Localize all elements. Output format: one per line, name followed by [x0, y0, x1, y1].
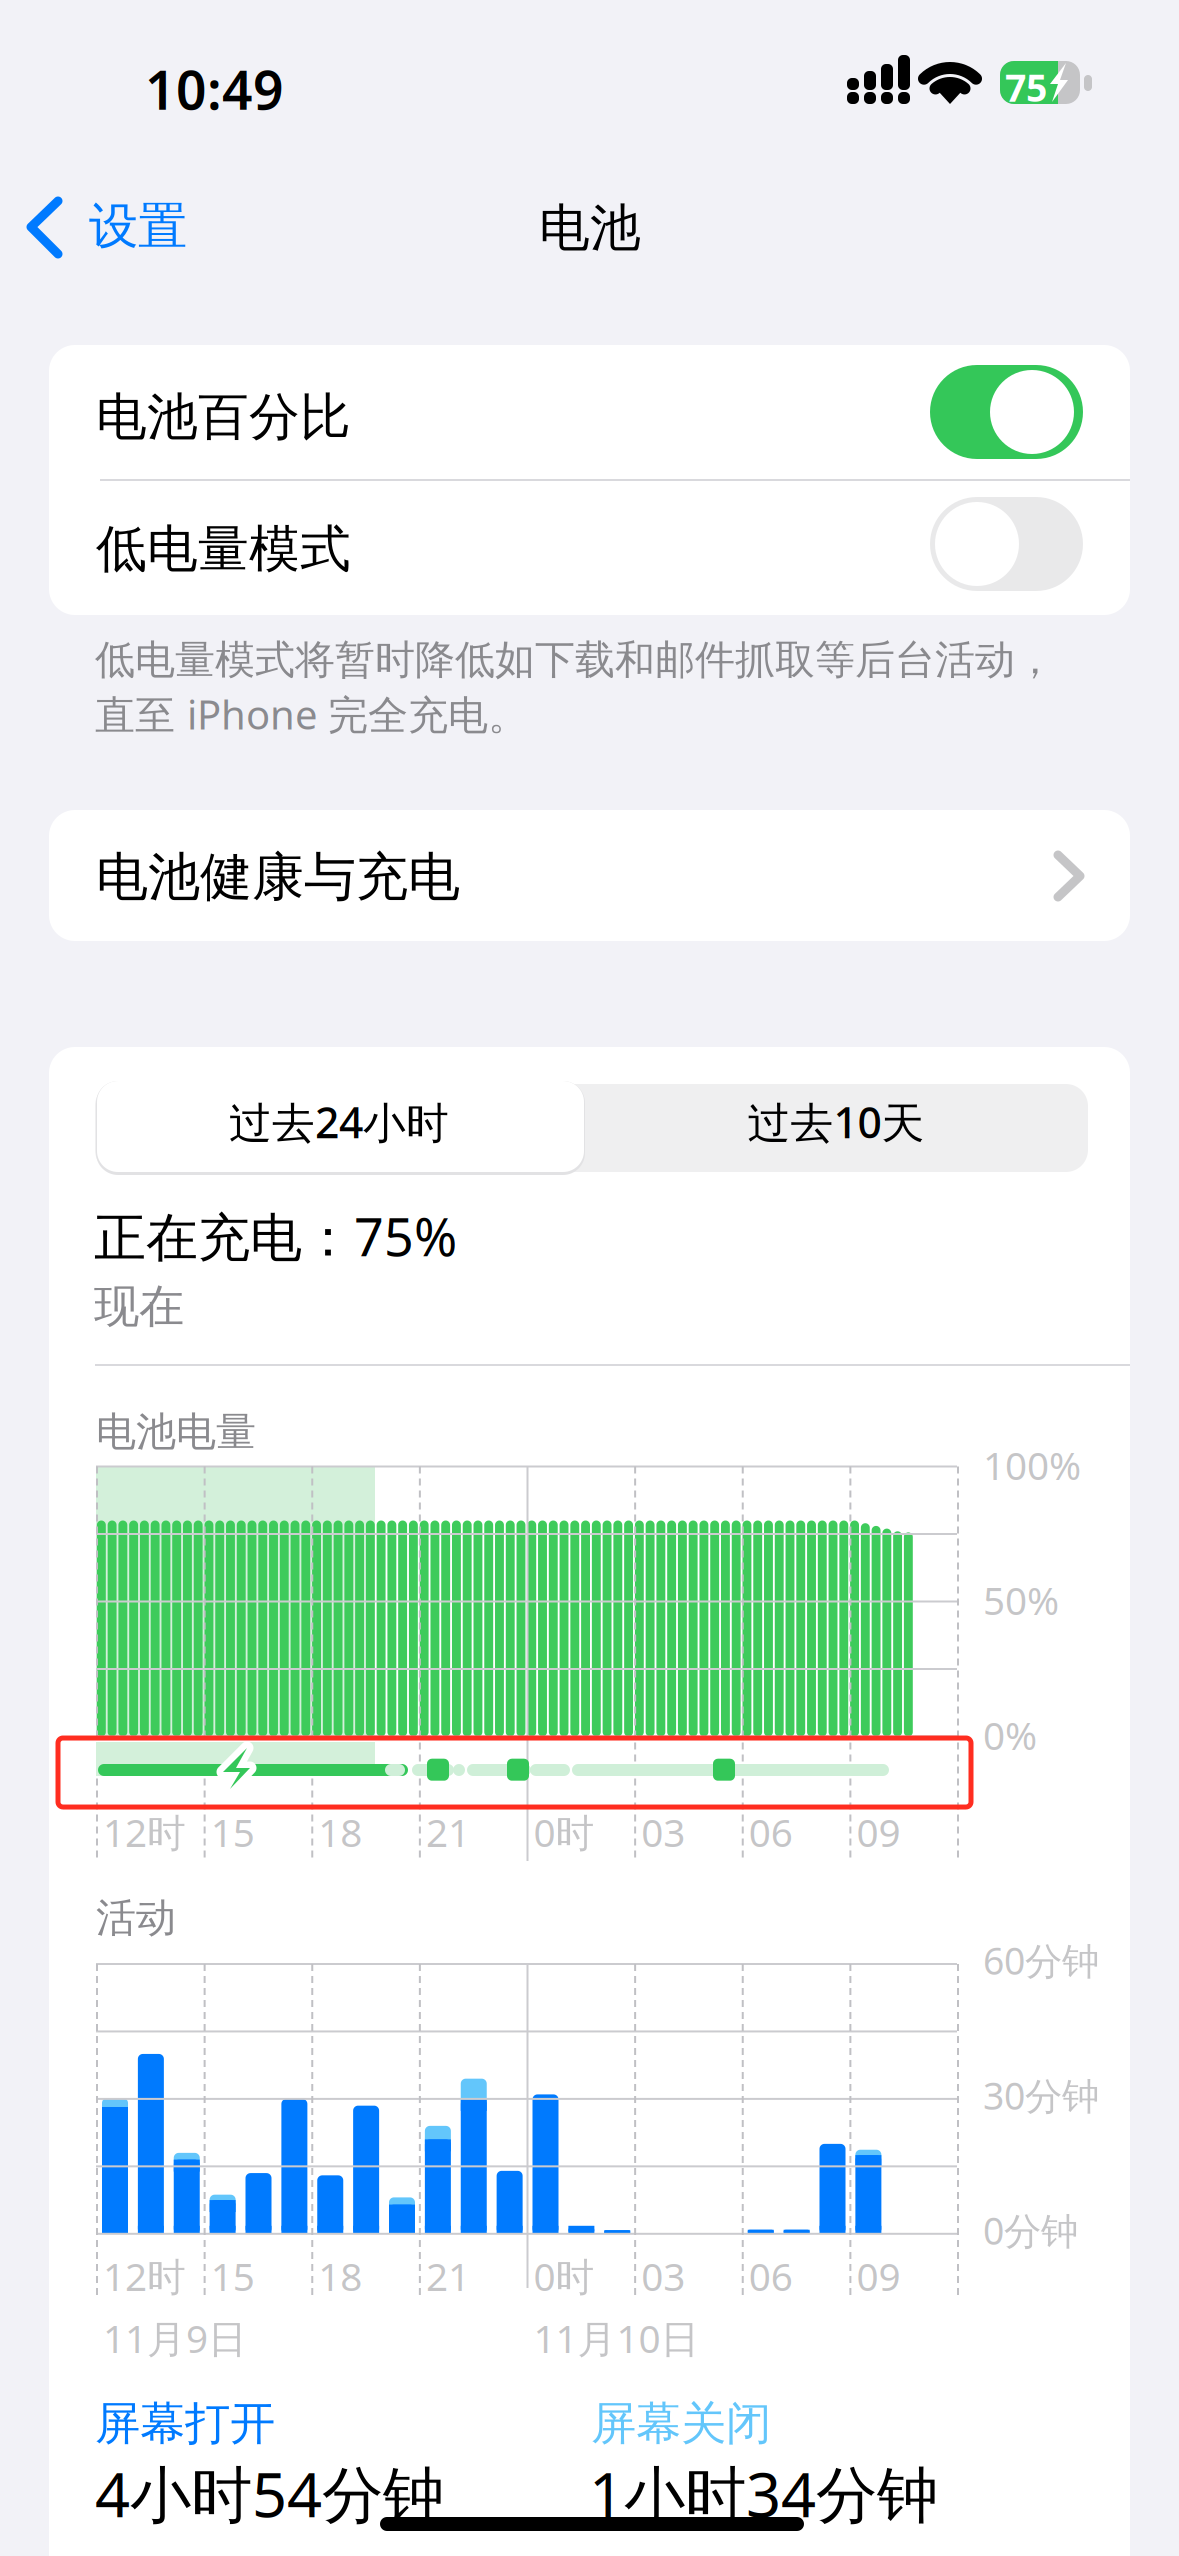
staticText: 直至 iPhone 完全充电。 [95, 687, 528, 741]
staticText: 设置 [89, 195, 187, 257]
staticText: 100% [983, 1439, 1081, 1491]
staticText: 11月10日 [533, 2312, 699, 2364]
staticText: 现在 [94, 1278, 184, 1335]
staticText: 09 [856, 1806, 900, 1858]
staticText: 15 [211, 2250, 255, 2302]
button[interactable]: 低电量模式 [0, 0, 1179, 2556]
button[interactable]: 过去10天 [0, 0, 1179, 2556]
staticText: 21 [426, 1806, 470, 1858]
staticText: 15 [211, 1806, 255, 1858]
staticText: 12时 [103, 2250, 186, 2302]
staticText: 电池电量 [96, 1407, 256, 1457]
staticText: 电池百分比 [96, 385, 351, 449]
staticText: 21 [426, 2250, 470, 2302]
staticText: 75 [1005, 62, 1047, 113]
staticText: 低电量模式将暂时降低如下载和邮件抓取等后台活动， [95, 635, 1055, 685]
staticText: 过去10天 [747, 1093, 924, 1151]
staticText: 活动 [96, 1893, 176, 1943]
button[interactable]: 电池百分比 [0, 0, 1179, 2556]
staticText: 06 [749, 2250, 793, 2302]
staticText: 10:49 [145, 53, 284, 125]
staticText: 屏幕打开 [95, 2395, 275, 2452]
staticText: 1小时34分钟 [589, 2452, 938, 2535]
button[interactable]: 设置 [0, 0, 1179, 2556]
staticText: 电池健康与充电 [96, 844, 460, 910]
staticText: 0时 [533, 1806, 594, 1858]
staticText: 12时 [103, 1806, 186, 1858]
staticText: 09 [856, 2250, 900, 2302]
staticText: 60分钟 [983, 1935, 1099, 1986]
staticText: 电池 [539, 196, 641, 260]
button[interactable]: 电池健康与充电 [0, 0, 1179, 2556]
staticText: 11月9日 [103, 2312, 247, 2364]
staticText: 正在充电：75% [94, 1201, 457, 1271]
staticText: 0% [983, 1709, 1037, 1761]
staticText: 0时 [533, 2250, 594, 2302]
staticText: 过去24小时 [229, 1093, 449, 1151]
staticText: 0分钟 [983, 2205, 1078, 2256]
staticText: 06 [749, 1806, 793, 1858]
button[interactable]: 过去24小时 [0, 0, 1179, 2556]
staticText: 低电量模式 [96, 517, 351, 581]
staticText: 18 [318, 2250, 362, 2302]
staticText: 18 [318, 1806, 362, 1858]
staticText: 03 [641, 2250, 685, 2302]
staticText: 30分钟 [983, 2070, 1099, 2121]
staticText: 屏幕关闭 [591, 2395, 771, 2452]
staticText: 03 [641, 1806, 685, 1858]
staticText: 50% [983, 1574, 1059, 1626]
staticText: 4小时54分钟 [95, 2452, 444, 2535]
